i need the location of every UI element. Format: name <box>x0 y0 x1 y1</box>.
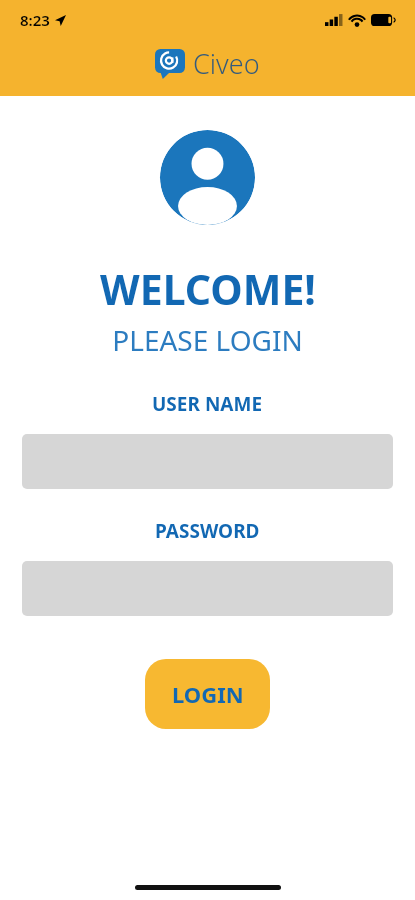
staticText: USER NAME <box>152 391 263 417</box>
button[interactable]: LOGIN <box>145 659 270 729</box>
staticText: WELCOME! <box>100 261 316 317</box>
staticText: 8:23 <box>20 10 50 30</box>
staticText: Civeo <box>193 45 260 82</box>
staticText: LOGIN <box>172 679 244 709</box>
staticText: PASSWORD <box>155 518 260 544</box>
staticText: PLEASE LOGIN <box>112 321 303 359</box>
